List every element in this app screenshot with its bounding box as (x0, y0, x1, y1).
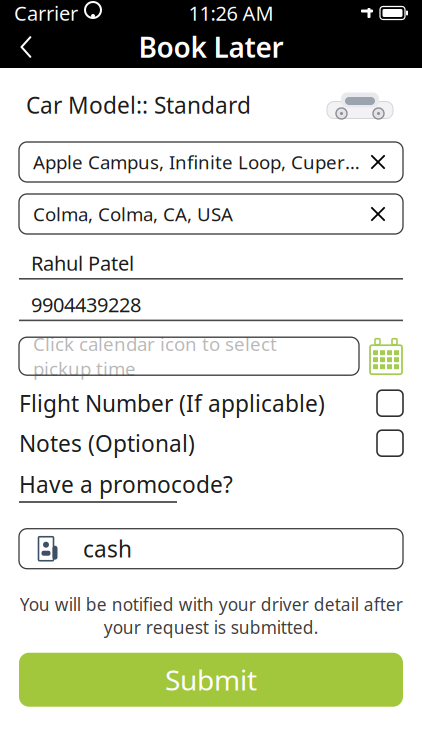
button[interactable]: Click calendar icon to select pickup tim… (19, 337, 359, 375)
staticText: 11:26 AM (188, 0, 273, 26)
staticText: Have a promocode? (19, 469, 233, 499)
button[interactable]: 9904439228 (0, 290, 422, 321)
staticText: cash (83, 534, 132, 564)
button[interactable]: Apple Campus, Infinite Loop, Cupertino, … (0, 142, 422, 182)
staticText: Car Model:: Standard (26, 90, 251, 120)
staticText: Submit (165, 661, 257, 698)
button[interactable]: Colma, Colma, CA, USA (0, 194, 422, 234)
button[interactable]: cash (0, 503, 422, 569)
staticText: Rahul Patel (31, 250, 134, 276)
staticText: 9904439228 (31, 291, 141, 318)
button[interactable]: Have a promocode? (0, 459, 252, 503)
button[interactable]: Submit (0, 639, 422, 707)
button[interactable]: Flight Number (If applicable) (0, 387, 422, 419)
button[interactable]: Notes (Optional) (0, 427, 422, 459)
staticText: Flight Number (If applicable) (19, 388, 325, 418)
staticText: Apple Campus, Infinite Loop, Cupertino, … (33, 150, 361, 174)
button[interactable]: Select pickup date and time (369, 337, 403, 375)
staticText: Notes (Optional) (19, 428, 195, 458)
staticText: You will be notified with your driver de… (19, 593, 402, 639)
button[interactable]: Rahul Patel (0, 248, 422, 280)
staticText: Book Later (138, 28, 283, 66)
staticText: Carrier (14, 0, 78, 26)
staticText: Colma, Colma, CA, USA (33, 202, 233, 226)
button[interactable]: Back (0, 27, 52, 67)
staticText: Click calendar icon to select pickup tim… (33, 331, 277, 381)
